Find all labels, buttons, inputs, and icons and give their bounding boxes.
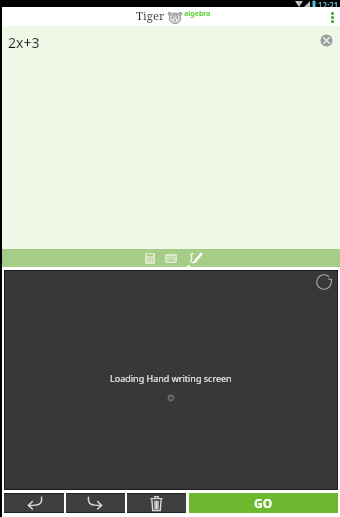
- staticText: GO: [254, 495, 273, 511]
- button[interactable]: Calculator keypad: [140, 249, 160, 267]
- button[interactable]: Redo: [66, 494, 125, 512]
- button[interactable]: Undo: [4, 494, 64, 512]
- button[interactable]: Refresh: [315, 273, 333, 291]
- staticText: Loading Hand writing screen: [110, 372, 232, 384]
- button[interactable]: Delete: [127, 494, 186, 512]
- staticText: 12:21: [318, 0, 339, 7]
- button[interactable]: Handwriting: [181, 249, 205, 267]
- button[interactable]: GO: [189, 493, 338, 513]
- button[interactable]: More options: [322, 7, 340, 26]
- button[interactable]: Keyboard: [160, 249, 181, 267]
- staticText: algebra: [184, 9, 211, 19]
- staticText: Tiger: [136, 8, 165, 24]
- staticText: 2x+3: [8, 33, 40, 52]
- button[interactable]: Clear: [320, 34, 333, 47]
